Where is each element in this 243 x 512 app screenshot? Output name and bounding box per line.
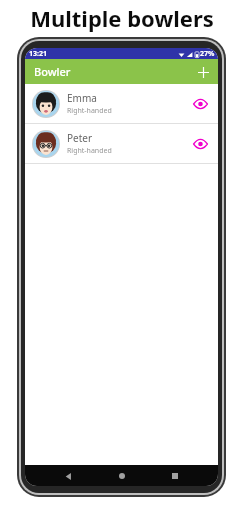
- button[interactable]: Emma: [25, 84, 218, 123]
- staticText: Emma: [67, 91, 97, 105]
- button[interactable]: Select bowler: [189, 133, 211, 155]
- staticText: Peter: [67, 131, 93, 145]
- staticText: Right-handed: [67, 146, 112, 156]
- staticText: Bowler: [34, 64, 71, 79]
- button[interactable]: Recents: [165, 466, 185, 486]
- button[interactable]: Add bowler: [192, 61, 214, 83]
- staticText: 13:21: [29, 49, 47, 59]
- button[interactable]: Back: [58, 466, 78, 486]
- staticText: Multiple bowlers: [30, 3, 214, 33]
- staticText: 27%: [200, 49, 215, 59]
- button[interactable]: Select bowler: [189, 93, 211, 115]
- staticText: Right-handed: [67, 106, 112, 116]
- button[interactable]: Home: [112, 466, 132, 486]
- button[interactable]: Peter: [25, 124, 218, 163]
